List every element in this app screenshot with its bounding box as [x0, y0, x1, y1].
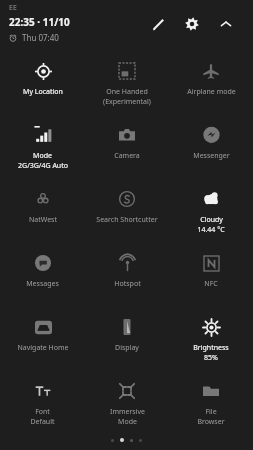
staticText: 14.44 °C [197, 225, 225, 235]
button[interactable]: Settings [179, 11, 205, 37]
button[interactable]: One Handed [85, 52, 169, 116]
staticText: Display [115, 343, 139, 353]
staticText: Thu 07:40 [22, 32, 59, 43]
button[interactable]: NatWest [0, 180, 85, 244]
button[interactable]: My Location [0, 52, 85, 116]
staticText: 2G/3G/4G Auto [18, 161, 68, 171]
staticText: Cloudy [200, 215, 223, 225]
button[interactable]: Display [85, 308, 169, 372]
button[interactable]: Airplane mode [169, 52, 253, 116]
button[interactable]: File [169, 372, 253, 436]
staticText: My Location [23, 87, 63, 97]
button[interactable]: Collapse [213, 11, 239, 37]
staticText: 22:35 · 11/10 [9, 15, 70, 29]
button[interactable]: Brightness [169, 308, 253, 372]
staticText: Camera [114, 151, 140, 161]
staticText: Browser [197, 417, 225, 427]
staticText: 85% [204, 353, 218, 363]
staticText: Messages [26, 279, 59, 289]
staticText: Mode [118, 417, 137, 427]
button[interactable]: Camera [85, 116, 169, 180]
staticText: Search Shortcutter [96, 215, 158, 225]
staticText: EE [9, 3, 17, 13]
staticText: Mode [33, 151, 52, 161]
staticText: Airplane mode [187, 87, 236, 97]
button[interactable]: NFC [169, 244, 253, 308]
button[interactable]: Immersive [85, 372, 169, 436]
staticText: Immersive [110, 407, 145, 417]
staticText: NFC [204, 279, 218, 289]
button[interactable]: Cloudy [169, 180, 253, 244]
button[interactable]: Mode [0, 116, 85, 180]
staticText: Brightness [193, 343, 229, 353]
staticText: (Experimental) [103, 97, 151, 107]
staticText: Navigate Home [17, 343, 69, 353]
button[interactable]: Hotspot [85, 244, 169, 308]
button[interactable]: Messenger [169, 116, 253, 180]
staticText: Messenger [193, 151, 230, 161]
staticText: NatWest [29, 215, 57, 225]
staticText: File [205, 407, 217, 417]
staticText: Hotspot [114, 279, 141, 289]
button[interactable]: Font [0, 372, 85, 436]
staticText: Font [35, 407, 50, 417]
button[interactable]: Search Shortcutter [85, 180, 169, 244]
button[interactable]: Messages [0, 244, 85, 308]
button[interactable]: Navigate Home [0, 308, 85, 372]
staticText: One Handed [106, 87, 148, 97]
button[interactable]: Edit [145, 11, 171, 37]
staticText: Default [30, 417, 55, 427]
